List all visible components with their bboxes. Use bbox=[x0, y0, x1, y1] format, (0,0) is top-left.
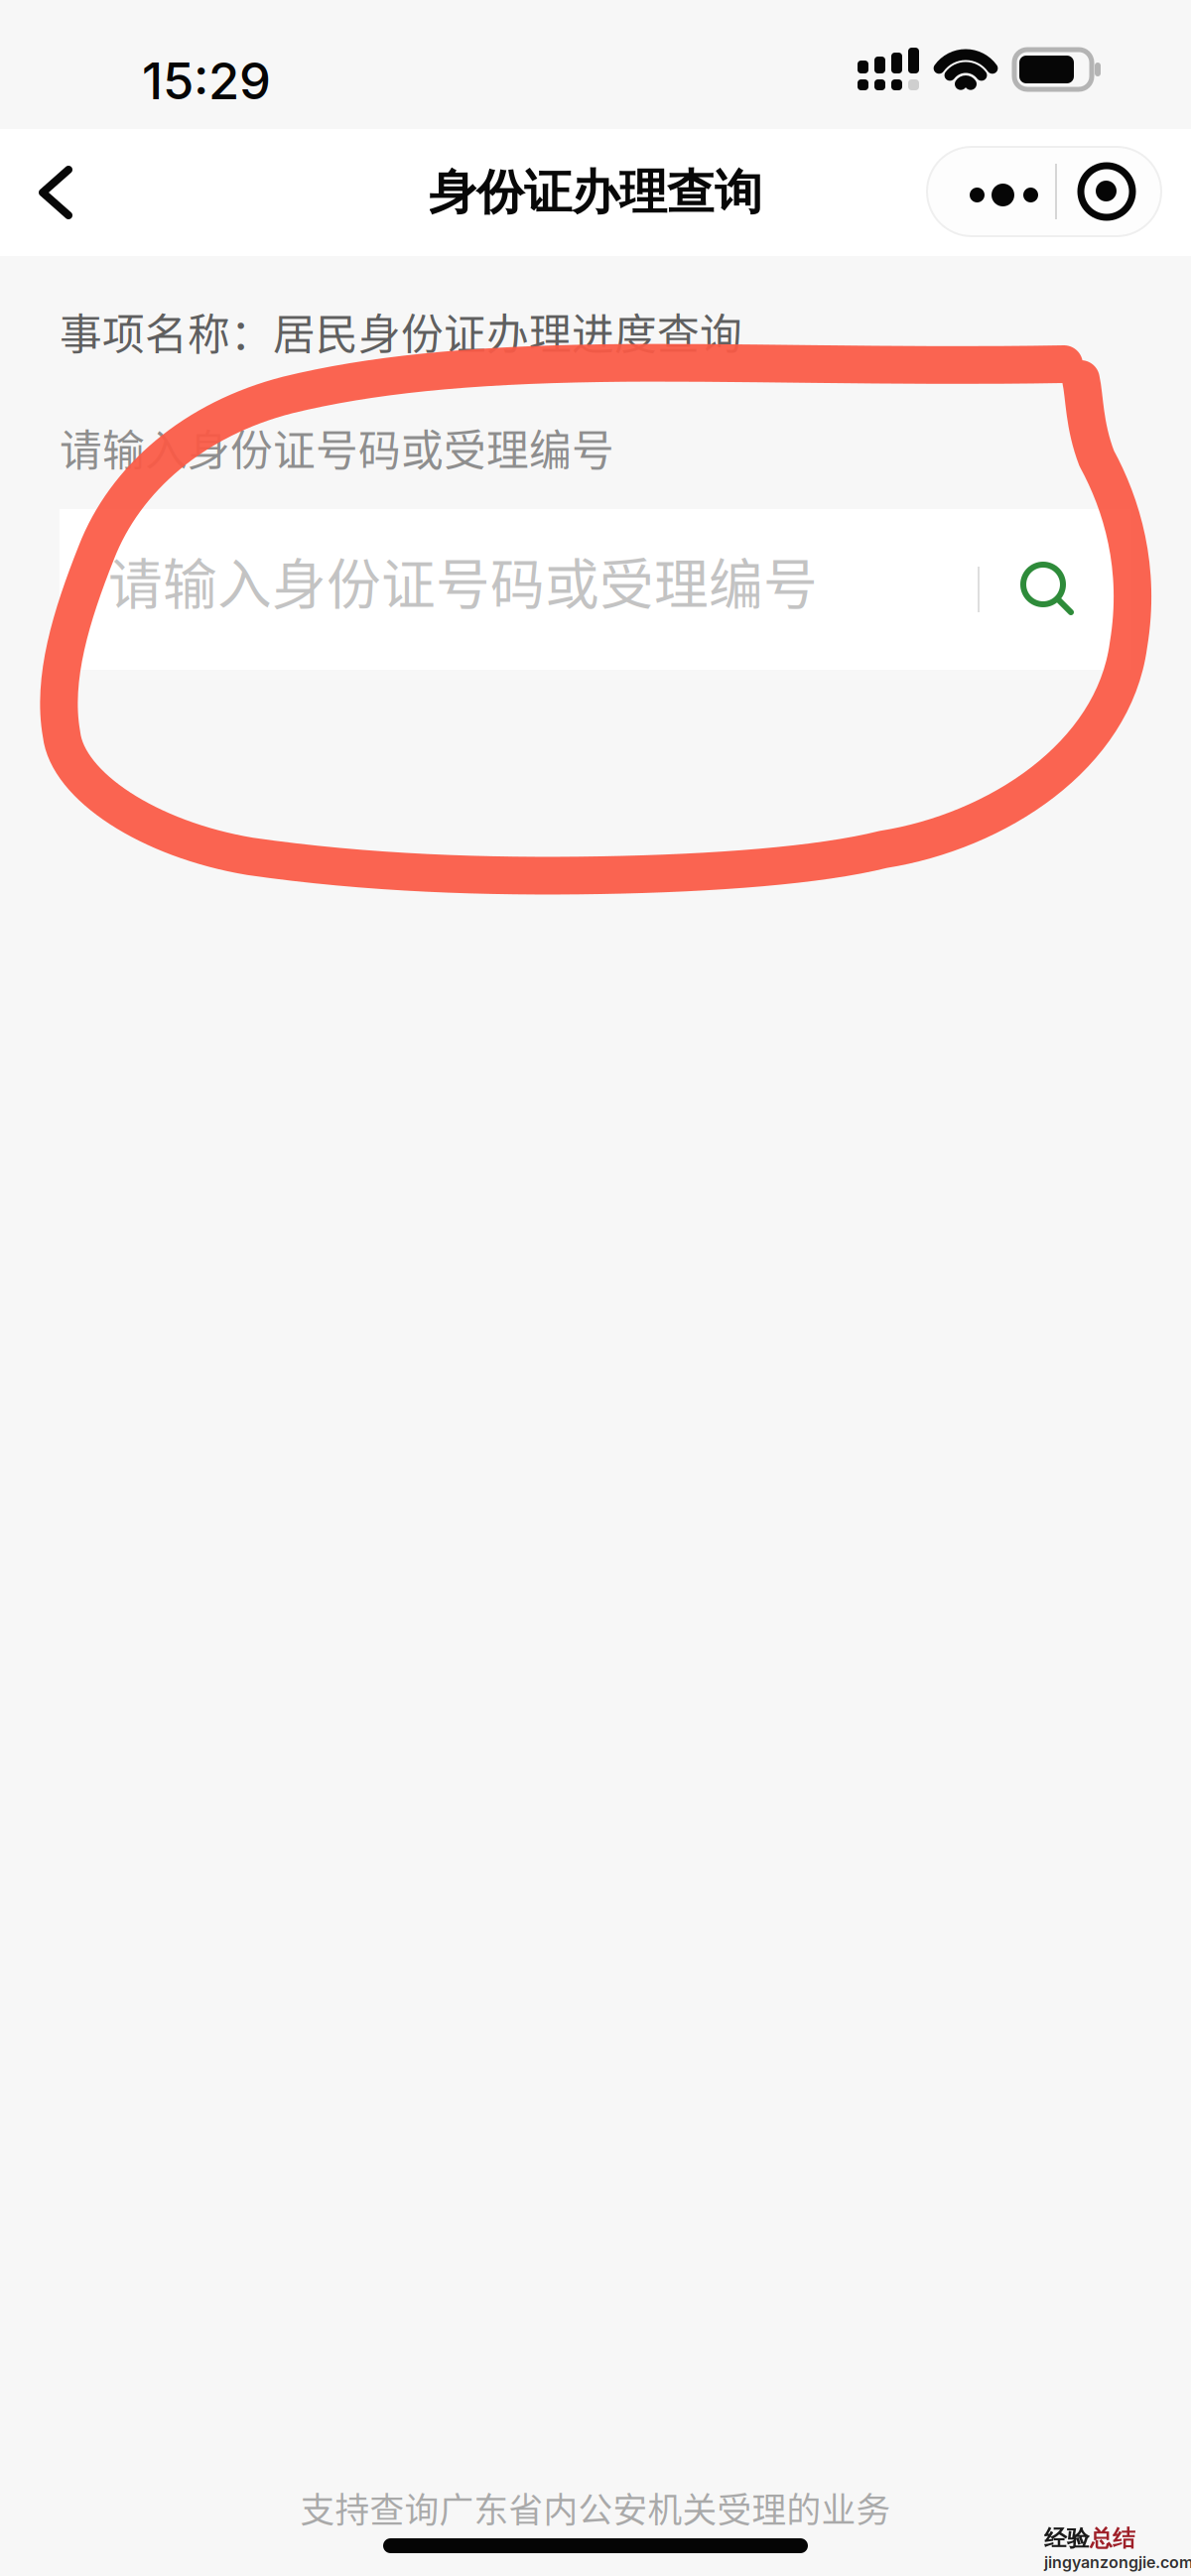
staticText: 事项名称：居民身份证办理进度查询 bbox=[60, 301, 742, 362]
button[interactable]: 请输入身份证号码或受理编号 bbox=[60, 509, 1131, 670]
staticText: 身份证办理查询 bbox=[429, 163, 762, 223]
button[interactable]: 返回 bbox=[0, 129, 111, 256]
staticText: 支持查询广东省内公安机关受理的业务 bbox=[300, 2483, 891, 2533]
staticText: jingyanzongjie.com bbox=[1044, 2553, 1191, 2572]
staticText: 请输入身份证号码或受理编号 bbox=[60, 417, 614, 478]
staticText: 总结 bbox=[1090, 2524, 1135, 2553]
staticText: 15:29 bbox=[142, 51, 271, 111]
staticText: 经验 bbox=[1044, 2524, 1090, 2553]
staticText: 请输入身份证号码或受理编号 bbox=[108, 541, 818, 619]
button[interactable]: 更多 bbox=[927, 147, 1161, 236]
